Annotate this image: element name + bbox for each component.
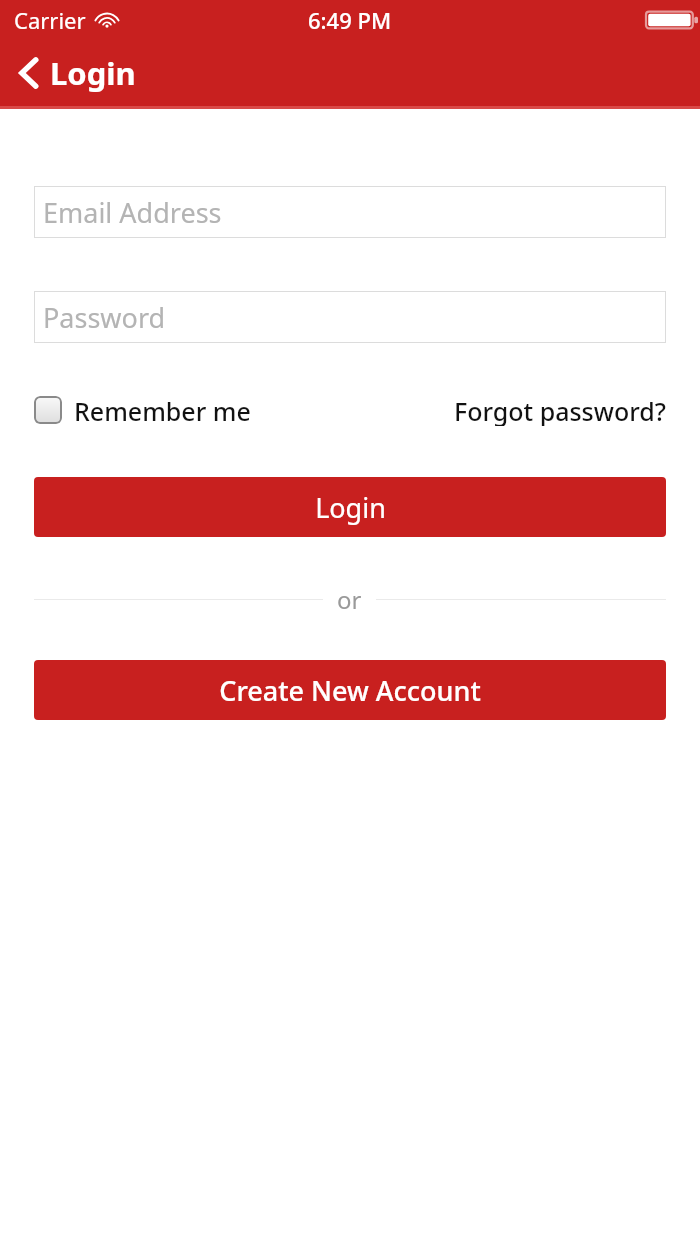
staticText: Remember me (74, 394, 251, 426)
other: Remember me checkbox (34, 396, 62, 424)
staticText: 6:49 PM (308, 5, 392, 35)
button[interactable]: Password (34, 291, 666, 343)
button[interactable]: Remember me checkbox (34, 394, 251, 426)
button[interactable]: Email Address (34, 186, 666, 238)
staticText: Email Address (43, 194, 222, 231)
staticText: Create New Account (219, 672, 481, 709)
button[interactable]: Create New Account (34, 660, 666, 720)
button[interactable]: Back (14, 46, 142, 100)
staticText: Password (43, 299, 166, 336)
staticText: Forgot password? (454, 394, 666, 426)
staticText: Carrier (14, 5, 86, 35)
staticText: Login (315, 489, 386, 526)
button[interactable]: Login (34, 477, 666, 537)
staticText: Login (50, 52, 136, 94)
staticText: or (337, 583, 362, 615)
button[interactable]: Forgot password? (454, 394, 666, 426)
